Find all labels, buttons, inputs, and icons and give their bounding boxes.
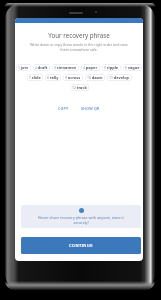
staticText: Never share recovery phrase with anyone,… — [21, 215, 141, 225]
staticText: 1 join — [18, 65, 29, 70]
button[interactable]: 2 draft — [33, 64, 50, 71]
button[interactable]: 6 vague — [123, 64, 142, 71]
button[interactable]: 9 across — [63, 74, 83, 81]
staticText: 4 paper — [83, 65, 98, 70]
button[interactable]: CONTINUE — [21, 237, 141, 254]
button[interactable]: 11 develop — [107, 74, 132, 81]
staticText: 9 across — [65, 75, 81, 80]
button[interactable]: 12 track — [70, 84, 89, 91]
button[interactable]: 3 cinnamon — [52, 64, 79, 71]
staticText: 10 dawn — [87, 75, 103, 80]
staticText: 12 track — [72, 85, 87, 90]
staticText: Write down or copy these words in the ri… — [15, 42, 143, 52]
staticText: SHOW QR — [81, 106, 100, 111]
staticText: 5 ripple — [104, 65, 119, 70]
staticText: COPY — [58, 106, 69, 111]
button[interactable]: 5 ripple — [102, 64, 121, 71]
staticText: 3 cinnamon — [54, 65, 77, 70]
button[interactable]: COPY — [55, 105, 72, 112]
button[interactable]: Never share recovery phrase with anyone,… — [21, 205, 141, 228]
button[interactable]: 8 rally — [45, 74, 61, 81]
staticText: 6 vague — [125, 65, 140, 70]
staticText: 8 rally — [47, 75, 59, 80]
button[interactable]: 4 paper — [81, 64, 100, 71]
button[interactable]: 7 slide — [27, 74, 43, 81]
staticText: 2 draft — [35, 65, 48, 70]
staticText: Your recovery phrase — [15, 31, 143, 39]
button[interactable]: 10 dawn — [85, 74, 105, 81]
staticText: 11 develop — [109, 75, 130, 80]
button[interactable]: 1 join — [16, 64, 31, 71]
button[interactable]: SHOW QR — [78, 105, 103, 112]
staticText: CONTINUE — [69, 243, 93, 248]
staticText: 7 slide — [29, 75, 41, 80]
